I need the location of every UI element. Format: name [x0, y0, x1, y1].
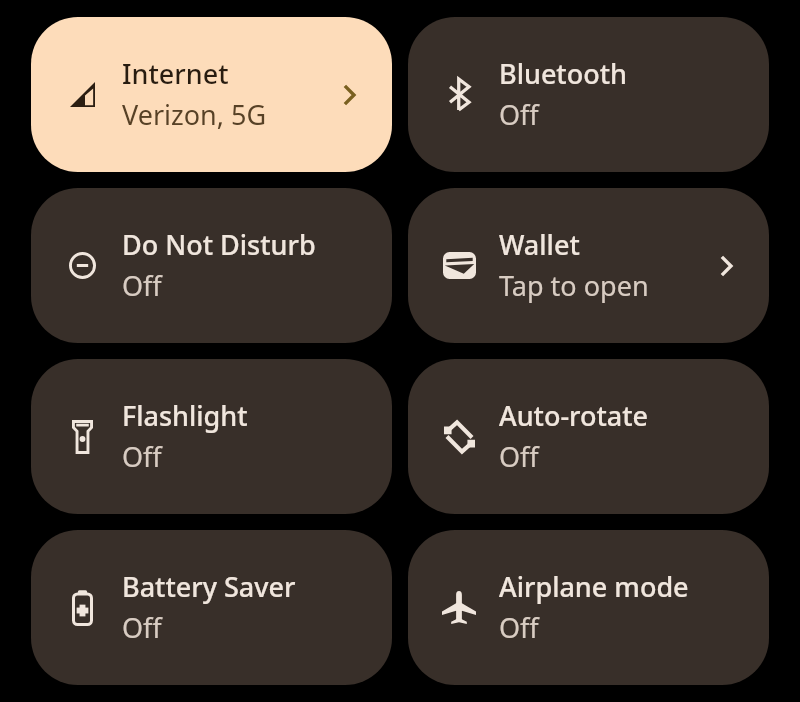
button[interactable]: Flashlight [31, 359, 392, 514]
staticText: Battery Saver [122, 568, 296, 605]
staticText: Off [122, 267, 162, 304]
button[interactable]: Auto-rotate [408, 359, 769, 514]
staticText: Off [499, 438, 539, 475]
button[interactable]: Open Wallet settings [720, 255, 733, 277]
staticText: Internet [122, 55, 229, 92]
staticText: Do Not Disturb [122, 226, 316, 263]
button[interactable]: Open Internet settings [343, 84, 356, 106]
staticText: Off [122, 609, 162, 646]
staticText: Bluetooth [499, 55, 627, 92]
button[interactable]: Airplane mode [408, 530, 769, 685]
staticText: Verizon, 5G [122, 96, 267, 133]
button[interactable]: Bluetooth [408, 17, 769, 172]
button[interactable]: Wallet [408, 188, 769, 343]
staticText: Wallet [499, 226, 580, 263]
staticText: Off [499, 609, 539, 646]
staticText: Off [122, 438, 162, 475]
button[interactable]: Internet [31, 17, 392, 172]
staticText: Flashlight [122, 397, 248, 434]
staticText: Off [499, 96, 539, 133]
button[interactable]: Battery Saver [31, 530, 392, 685]
staticText: Tap to open [499, 267, 649, 304]
staticText: Auto-rotate [499, 397, 649, 434]
button[interactable]: Do Not Disturb [31, 188, 392, 343]
staticText: Airplane mode [499, 568, 689, 605]
